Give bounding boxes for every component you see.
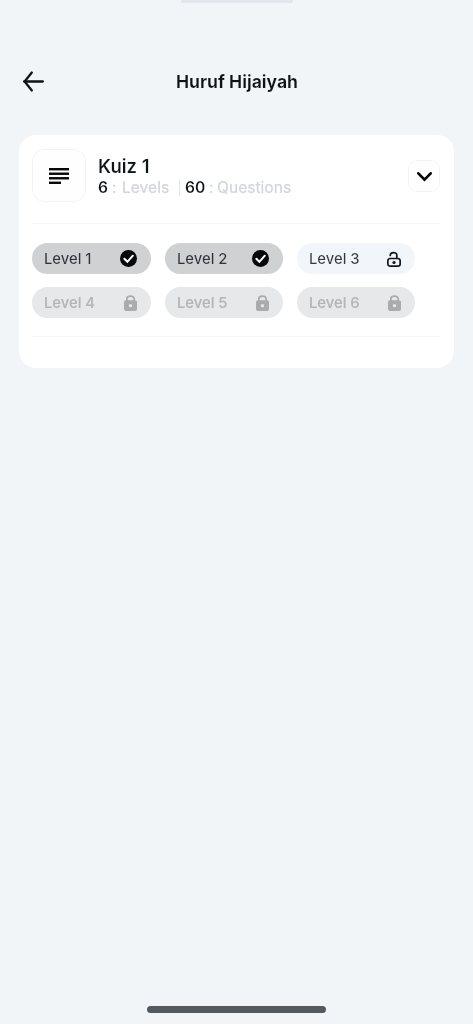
button[interactable]: Quiz icon xyxy=(32,149,86,202)
staticText: Level 1 xyxy=(44,250,92,268)
button[interactable]: Level 4 xyxy=(32,287,151,318)
staticText: : xyxy=(112,178,117,197)
button[interactable]: Level 1 xyxy=(32,243,151,274)
staticText: Kuiz 1 xyxy=(98,155,150,177)
staticText: Level 5 xyxy=(177,294,228,312)
staticText: Questions xyxy=(217,178,292,197)
staticText: Level 6 xyxy=(309,294,360,312)
button[interactable]: Expand xyxy=(408,160,440,192)
staticText: Huruf Hijaiyah xyxy=(176,71,298,92)
staticText: Level 4 xyxy=(44,294,96,312)
staticText: : xyxy=(209,178,214,197)
staticText: 60 xyxy=(185,178,206,197)
button[interactable]: Level 6 xyxy=(297,287,415,318)
button[interactable]: Level 3 xyxy=(297,243,415,274)
button[interactable]: Level 5 xyxy=(165,287,283,318)
staticText: Level 2 xyxy=(177,250,228,268)
staticText: 6 xyxy=(98,178,108,197)
staticText: Level 3 xyxy=(309,250,360,268)
staticText: Levels xyxy=(122,178,170,197)
button[interactable]: Back xyxy=(13,61,53,101)
button[interactable]: Level 2 xyxy=(165,243,283,274)
